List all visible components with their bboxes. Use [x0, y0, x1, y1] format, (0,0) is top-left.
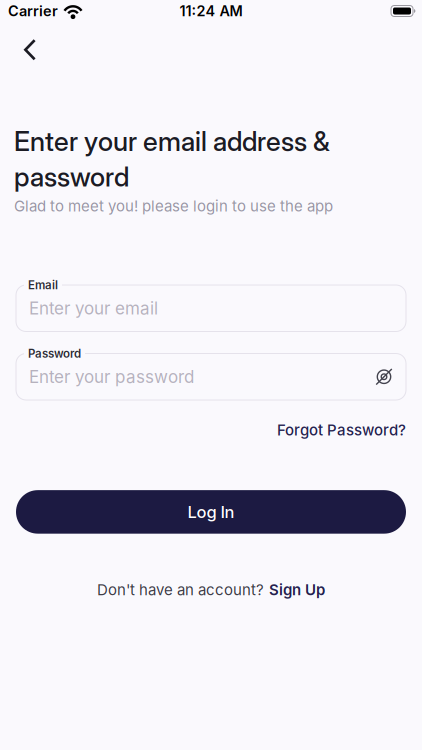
staticText: Enter your email address &: [14, 125, 330, 157]
button[interactable]: Back: [0, 22, 46, 68]
staticText: Enter your email: [29, 298, 158, 319]
staticText: Don't have an account?: [97, 581, 264, 599]
staticText: Glad to meet you! please login to use th…: [14, 197, 333, 215]
button[interactable]: Show password: [375, 368, 393, 386]
staticText: password: [14, 160, 129, 193]
button[interactable]: Forgot Password?: [277, 421, 406, 439]
staticText: Sign Up: [269, 581, 325, 599]
button[interactable]: Log In: [16, 490, 406, 534]
staticText: 11:24 AM: [179, 2, 242, 20]
staticText: Email: [28, 278, 58, 292]
staticText: Carrier: [8, 2, 58, 20]
staticText: Enter your password: [29, 366, 194, 387]
staticText: Forgot Password?: [277, 421, 406, 439]
staticText: Password: [28, 346, 81, 360]
button[interactable]: Sign Up: [269, 581, 325, 599]
staticText: Log In: [187, 502, 234, 522]
